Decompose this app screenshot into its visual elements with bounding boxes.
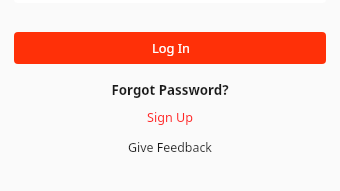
staticText: Sign Up bbox=[147, 109, 193, 126]
button[interactable]: Sign Up bbox=[0, 106, 340, 128]
button[interactable]: Log In bbox=[14, 32, 326, 64]
staticText: Give Feedback bbox=[128, 139, 212, 156]
button[interactable]: Forgot Password? bbox=[0, 79, 340, 101]
button[interactable]: Give Feedback bbox=[0, 136, 340, 158]
staticText: Forgot Password? bbox=[111, 81, 229, 99]
staticText: Log In bbox=[152, 39, 190, 56]
